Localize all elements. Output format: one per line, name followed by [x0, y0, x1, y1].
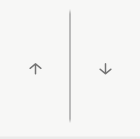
button[interactable]: Up: [0, 0, 70, 139]
button[interactable]: Down: [70, 0, 140, 139]
